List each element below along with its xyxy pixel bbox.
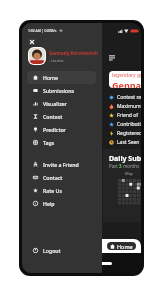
button[interactable]: Home [107, 242, 136, 250]
button[interactable]: Submissions [27, 84, 96, 97]
staticText: Visualizer [43, 100, 67, 107]
staticText: Help [43, 200, 55, 207]
button[interactable]: Registered [109, 129, 141, 138]
staticText: Contact [43, 174, 63, 181]
staticText: Home [43, 74, 58, 81]
button[interactable]: Gennady.Korotkevich [28, 47, 102, 65]
button[interactable]: Contribution [109, 120, 141, 129]
button[interactable]: Open navigation menu [103, 49, 121, 67]
button[interactable]: Help [27, 197, 96, 210]
staticText: Home [117, 243, 133, 250]
staticText: legendary grandmaster [112, 72, 141, 79]
staticText: Daily Submissions [109, 154, 141, 164]
staticText: 3 [119, 163, 122, 169]
button[interactable]: Contest [27, 110, 96, 123]
staticText: Friend of [117, 112, 138, 119]
button[interactable]: Predictor [27, 123, 96, 136]
staticText: Gennady.Korotkevich [49, 50, 99, 56]
staticText: Past [109, 163, 119, 169]
button[interactable]: legendary grandmaster [109, 71, 141, 88]
button[interactable]: Contact [27, 171, 96, 184]
button[interactable]: Close navigation drawer [27, 37, 36, 46]
staticText: Contest rating [117, 94, 141, 101]
staticText: 1:02 AM | 0.0KB/s [28, 28, 57, 33]
button[interactable]: Last Seen [109, 138, 141, 147]
staticText: Contribution [117, 121, 141, 128]
button[interactable]: Visualizer [27, 97, 96, 110]
staticText: Maximum rating [117, 103, 141, 110]
button[interactable]: Logout [27, 244, 96, 257]
button[interactable]: Home [27, 71, 96, 84]
button[interactable]: Maximum rating [109, 102, 141, 111]
staticText: May [125, 171, 133, 176]
staticText: Registered [117, 130, 141, 137]
staticText: Logout [43, 247, 61, 254]
button[interactable]: Friend of [109, 111, 141, 120]
staticText: months [122, 163, 140, 169]
staticText: Last Seen [117, 139, 140, 146]
staticText: - tourist [49, 58, 64, 63]
staticText: Tags [43, 139, 55, 146]
staticText: Submissions [43, 87, 75, 94]
staticText: Rate Us [43, 187, 62, 194]
staticText: Gennady.Korotkevich [112, 79, 141, 88]
staticText: Contest [43, 113, 63, 120]
button[interactable]: Rate Us [27, 184, 96, 197]
staticText: Predictor [43, 126, 66, 133]
button[interactable]: Tags [27, 136, 96, 149]
button[interactable]: Contest rating [109, 93, 141, 102]
button[interactable]: Invite a Friend [27, 158, 96, 171]
staticText: Invite a Friend [43, 161, 79, 168]
